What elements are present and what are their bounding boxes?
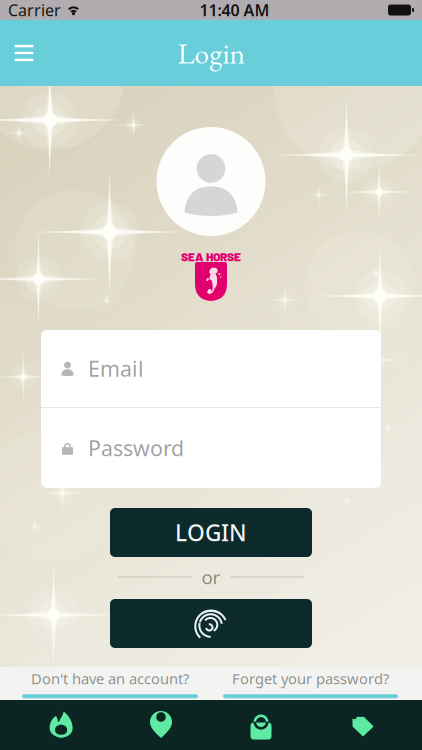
button[interactable]: LOGIN <box>110 508 312 557</box>
staticText: Don't have an account? <box>31 669 189 688</box>
button[interactable]: Nearby <box>122 700 200 750</box>
staticText: 11:40 AM <box>199 0 269 21</box>
staticText: Carrier <box>8 0 61 21</box>
button[interactable]: Sign in with fingerprint <box>110 599 312 648</box>
button[interactable]: Offers <box>322 700 402 750</box>
staticText: Password <box>88 434 184 462</box>
staticText: or <box>201 565 220 589</box>
button[interactable]: Forget your password? <box>223 665 398 701</box>
staticText: Forget your password? <box>232 669 389 688</box>
staticText: LOGIN <box>175 517 247 547</box>
button[interactable]: Don't have an account? <box>22 665 198 701</box>
button[interactable]: Menu <box>0 31 48 75</box>
staticText: Login <box>177 34 244 72</box>
staticText: SEA HORSE <box>181 249 241 264</box>
button[interactable]: Trending <box>0 700 122 750</box>
button[interactable]: Shop <box>200 700 322 750</box>
staticText: Email <box>88 354 144 383</box>
